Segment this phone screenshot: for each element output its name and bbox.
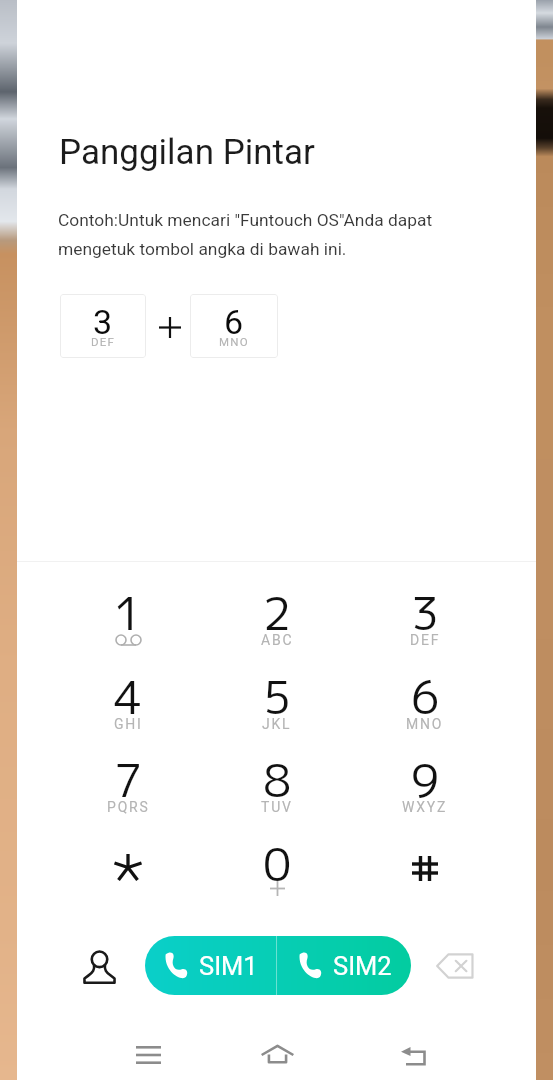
button[interactable]: 6 <box>370 653 480 731</box>
staticText: WXYZ <box>402 799 448 815</box>
staticText: PQRS <box>107 799 150 815</box>
button[interactable]: 7 <box>73 736 183 814</box>
staticText: GHI <box>114 716 143 732</box>
staticText: 7 <box>114 748 143 811</box>
button[interactable]: 5 <box>222 653 332 731</box>
staticText: 4 <box>114 665 143 728</box>
staticText: Contoh:Untuk mencari "Funtouch OS"Anda d… <box>58 210 433 259</box>
button[interactable]: 0 <box>222 820 332 898</box>
staticText: DEF <box>91 335 116 348</box>
button[interactable]: 3 <box>370 569 480 647</box>
button[interactable]: Back <box>383 1023 443 1080</box>
button[interactable]: 8 <box>222 736 332 814</box>
staticText: 6 <box>411 665 440 728</box>
staticText: TUV <box>261 799 293 815</box>
button[interactable]: SIM1 <box>145 936 276 995</box>
button[interactable]: Recents <box>118 1023 178 1080</box>
staticText: 2 <box>263 581 292 644</box>
staticText: 8 <box>263 748 292 811</box>
staticText: Panggilan Pintar <box>59 132 315 173</box>
staticText: 3 <box>93 302 113 342</box>
button[interactable]: 1 <box>73 569 183 647</box>
button[interactable]: 3 <box>60 294 146 358</box>
staticText: 9 <box>411 748 440 811</box>
staticText: ABC <box>261 632 294 648</box>
button[interactable]: Home <box>247 1023 307 1080</box>
button[interactable]: 4 <box>73 653 183 731</box>
staticText: MNO <box>219 335 249 348</box>
button[interactable]: SIM2 <box>277 936 411 995</box>
staticText: 5 <box>263 665 292 728</box>
staticText: SIM2 <box>333 951 392 981</box>
staticText: 6 <box>224 302 244 342</box>
button[interactable]: Contacts <box>66 933 132 999</box>
staticText: JKL <box>262 716 292 732</box>
staticText: 1 <box>114 581 143 644</box>
staticText: MNO <box>406 716 444 732</box>
button[interactable]: 2 <box>222 569 332 647</box>
button[interactable] <box>73 820 183 898</box>
button[interactable]: Backspace <box>424 935 486 997</box>
staticText: DEF <box>410 632 441 648</box>
staticText: 3 <box>411 581 440 644</box>
staticText: 0 <box>263 832 292 895</box>
button[interactable] <box>370 820 480 898</box>
button[interactable]: 6 <box>190 294 278 358</box>
staticText: SIM1 <box>199 951 258 981</box>
button[interactable]: 9 <box>370 736 480 814</box>
